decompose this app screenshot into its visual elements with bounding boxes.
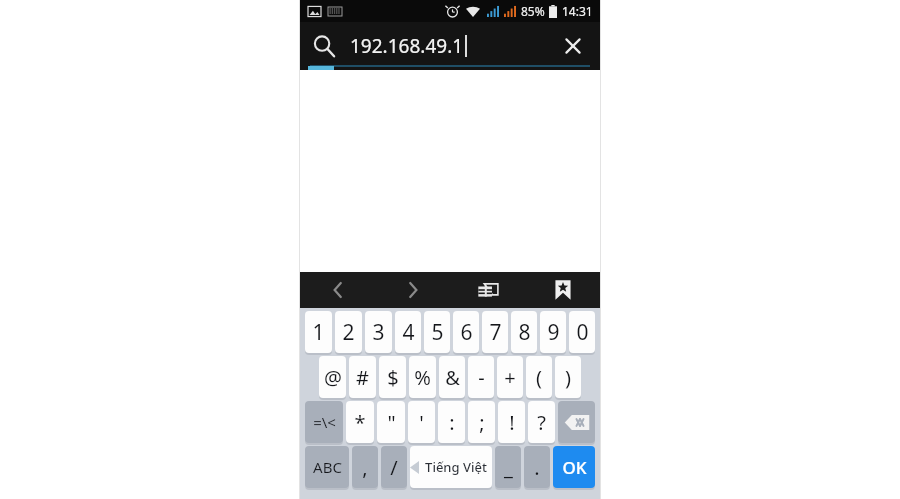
- staticText: ": [387, 409, 396, 436]
- button[interactable]: Search: [312, 34, 336, 58]
- button[interactable]: 4: [395, 311, 421, 353]
- staticText: 2: [342, 318, 355, 347]
- staticText: 0: [576, 318, 589, 347]
- staticText: #: [356, 364, 369, 391]
- button[interactable]: ?: [528, 401, 555, 443]
- button[interactable]: ': [408, 401, 435, 443]
- staticText: 8: [518, 318, 531, 347]
- staticText: .: [534, 454, 540, 481]
- button[interactable]: (: [526, 356, 552, 398]
- button[interactable]: ABC: [305, 446, 349, 488]
- staticText: OK: [562, 456, 587, 479]
- staticText: 85%: [521, 3, 545, 19]
- button[interactable]: 5: [424, 311, 450, 353]
- staticText: 4: [402, 318, 415, 347]
- staticText: 5: [431, 318, 444, 347]
- button[interactable]: Bookmarks: [525, 272, 600, 308]
- staticText: /: [390, 454, 398, 481]
- button[interactable]: &: [439, 356, 465, 398]
- staticText: (: [536, 364, 542, 391]
- button[interactable]: ): [555, 356, 581, 398]
- staticText: 14:31: [562, 3, 593, 19]
- button[interactable]: ": [377, 401, 405, 443]
- button[interactable]: OK: [553, 446, 595, 488]
- staticText: !: [509, 409, 515, 436]
- button[interactable]: Tiếng Việt: [410, 446, 492, 488]
- button[interactable]: 6: [453, 311, 479, 353]
- staticText: @: [324, 364, 342, 391]
- staticText: +: [504, 364, 516, 391]
- staticText: ': [419, 409, 424, 436]
- staticText: Tiếng Việt: [425, 458, 487, 476]
- button[interactable]: .: [524, 446, 550, 488]
- button[interactable]: 8: [511, 311, 537, 353]
- staticText: ?: [537, 409, 546, 436]
- staticText: ,: [362, 454, 368, 481]
- staticText: &: [445, 364, 460, 391]
- button[interactable]: #: [349, 356, 376, 398]
- button[interactable]: ,: [352, 446, 378, 488]
- staticText: _: [504, 454, 513, 481]
- staticText: ;: [479, 409, 485, 436]
- staticText: :: [449, 409, 455, 436]
- staticText: $: [387, 364, 399, 391]
- button[interactable]: %: [409, 356, 436, 398]
- button[interactable]: Tabs: [450, 272, 525, 308]
- staticText: 6: [460, 318, 473, 347]
- button[interactable]: -: [468, 356, 494, 398]
- button[interactable]: !: [498, 401, 525, 443]
- button[interactable]: Backspace: [558, 401, 595, 443]
- button[interactable]: Clear: [558, 31, 588, 61]
- staticText: 7: [489, 318, 502, 347]
- staticText: -: [478, 364, 485, 391]
- button[interactable]: :: [438, 401, 465, 443]
- button[interactable]: 1: [305, 311, 332, 353]
- button[interactable]: /: [381, 446, 407, 488]
- staticText: ABC: [313, 457, 342, 477]
- staticText: 9: [547, 318, 560, 347]
- staticText: 1: [312, 318, 325, 347]
- button[interactable]: 0: [569, 311, 595, 353]
- button[interactable]: =\<: [305, 401, 343, 443]
- button[interactable]: 7: [482, 311, 508, 353]
- button[interactable]: _: [495, 446, 521, 488]
- staticText: *: [354, 409, 366, 436]
- staticText: %: [414, 364, 431, 391]
- button[interactable]: 3: [365, 311, 392, 353]
- staticText: 192.168.49.1: [350, 33, 464, 59]
- button[interactable]: $: [379, 356, 406, 398]
- button[interactable]: +: [497, 356, 523, 398]
- button[interactable]: Back: [300, 272, 375, 308]
- staticText: 3: [372, 318, 385, 347]
- staticText: =\<: [313, 412, 336, 432]
- button[interactable]: 9: [540, 311, 566, 353]
- button[interactable]: *: [346, 401, 374, 443]
- button[interactable]: Forward: [375, 272, 450, 308]
- button[interactable]: @: [319, 356, 346, 398]
- staticText: ): [565, 364, 571, 391]
- button[interactable]: ;: [468, 401, 495, 443]
- button[interactable]: 2: [335, 311, 362, 353]
